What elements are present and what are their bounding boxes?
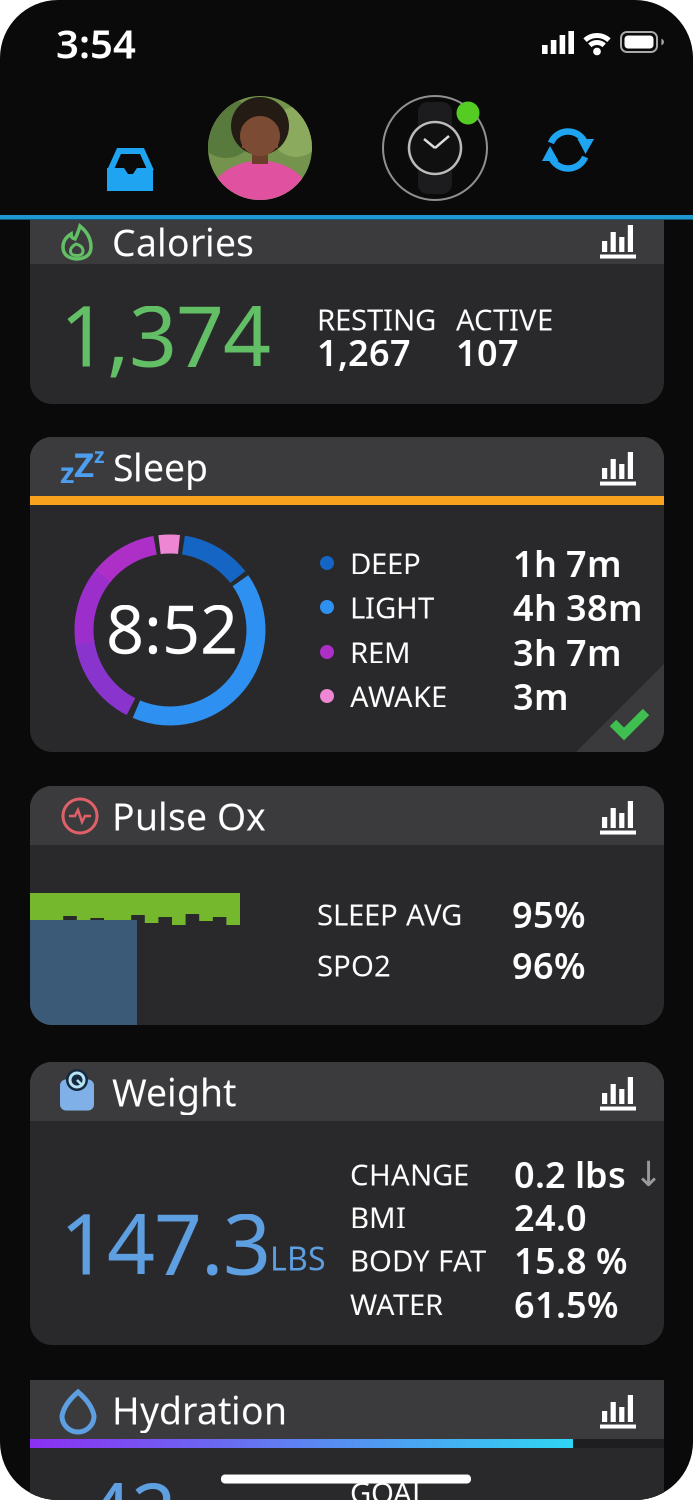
button[interactable]: Profile	[208, 96, 312, 200]
staticText: SLEEP AVG	[317, 894, 462, 933]
button[interactable]: Calories	[30, 220, 664, 404]
staticText: 3:54	[56, 16, 136, 69]
staticText: 15.8 %	[514, 1236, 628, 1284]
button[interactable]: Device	[375, 88, 495, 208]
button[interactable]: Hydration	[30, 1380, 664, 1500]
staticText: GOAL	[350, 1472, 427, 1500]
staticText: CHANGE	[350, 1154, 469, 1193]
staticText: Calories	[112, 217, 254, 267]
staticText: LIGHT	[350, 587, 434, 626]
staticText: Z	[74, 441, 94, 487]
staticText: 61.5%	[514, 1280, 619, 1328]
staticText: 107	[456, 328, 519, 376]
staticText: SPO2	[317, 945, 391, 984]
staticText: 3m	[513, 672, 569, 720]
staticText: Pulse Ox	[112, 791, 266, 841]
staticText: 8:52	[106, 584, 238, 672]
staticText: RESTING	[317, 299, 436, 338]
staticText: 147.3	[60, 1186, 271, 1298]
staticText: Weight	[112, 1067, 236, 1117]
staticText: 96%	[512, 941, 586, 989]
staticText: 3h 7m	[513, 628, 622, 676]
staticText: 95%	[512, 890, 586, 938]
button[interactable]: Inbox	[80, 110, 160, 190]
staticText: AWAKE	[350, 676, 447, 715]
staticText: Sleep	[113, 442, 208, 492]
staticText: WATER	[350, 1284, 443, 1323]
staticText: 1,374	[60, 278, 271, 390]
staticText: ACTIVE	[456, 299, 553, 338]
staticText: 4h 38m	[513, 583, 643, 631]
staticText: 42	[86, 1457, 177, 1500]
button[interactable]: Weight	[30, 1062, 664, 1345]
staticText: 1,267	[317, 328, 411, 376]
staticText: BODY FAT	[350, 1240, 486, 1279]
staticText: REM	[350, 632, 411, 671]
staticText: z	[94, 441, 105, 469]
button[interactable]: Sync	[533, 115, 603, 185]
staticText: 24.0	[514, 1193, 587, 1241]
staticText: Hydration	[112, 1385, 287, 1435]
staticText: 1h 7m	[513, 539, 622, 587]
staticText: 0.2 lbs	[514, 1150, 626, 1198]
staticText: DEEP	[350, 543, 421, 582]
staticText: BMI	[350, 1197, 406, 1236]
staticText: ↓	[634, 1154, 663, 1194]
button[interactable]: z	[30, 437, 664, 752]
button[interactable]: Pulse Ox	[30, 786, 664, 1025]
staticText: z	[60, 452, 74, 491]
staticText: LBS	[270, 1237, 326, 1279]
